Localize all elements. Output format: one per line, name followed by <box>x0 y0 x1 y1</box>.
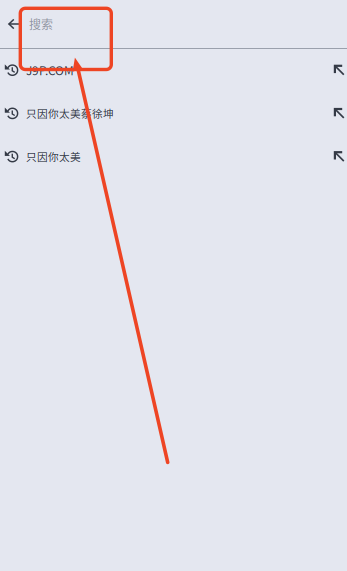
button[interactable]: J9P.COM <box>0 48 347 91</box>
button[interactable]: 搜索 <box>29 0 347 48</box>
staticText: 只因你太美 <box>26 149 81 164</box>
staticText: 只因你太美蔡徐坤 <box>26 105 114 121</box>
staticText: J9P.COM <box>26 61 74 79</box>
button[interactable]: 只因你太美蔡徐坤 <box>0 91 347 135</box>
button[interactable]: Back <box>0 0 29 48</box>
staticText: 搜索 <box>29 15 53 33</box>
button[interactable]: 只因你太美 <box>0 135 347 178</box>
